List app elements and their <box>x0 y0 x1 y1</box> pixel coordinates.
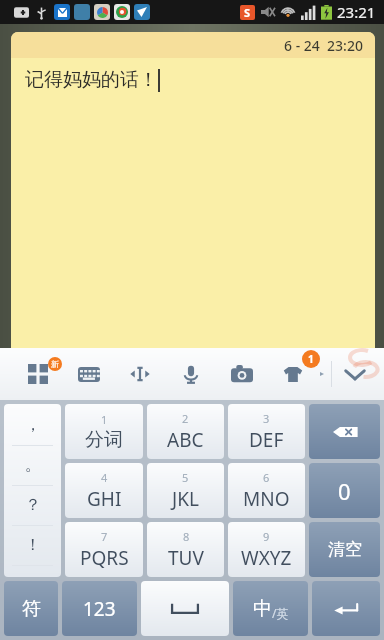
button[interactable]: 7 <box>65 522 143 577</box>
staticText: 分词 <box>85 428 123 452</box>
staticText: S <box>244 5 251 20</box>
staticText: ABC <box>167 427 204 453</box>
staticText: 7 <box>101 529 108 544</box>
staticText: 新 <box>51 359 59 369</box>
staticText: DEF <box>249 427 284 453</box>
staticText: 23:21 <box>337 2 376 22</box>
button[interactable]: ， <box>4 404 61 577</box>
staticText: 符 <box>22 597 41 621</box>
button[interactable]: 0 <box>309 463 380 518</box>
staticText: WXYZ <box>241 545 292 571</box>
staticText: GHI <box>87 486 122 512</box>
staticText: 3 <box>263 411 270 426</box>
other: Enter <box>332 600 360 618</box>
staticText: 。 <box>25 455 41 475</box>
button[interactable]: Enter <box>312 581 380 636</box>
staticText: 123 <box>83 596 116 622</box>
button[interactable]: Skins <box>273 354 313 394</box>
other: Space <box>168 602 202 616</box>
staticText: ！ <box>25 535 41 555</box>
button[interactable]: 符 <box>4 581 58 636</box>
staticText: 1 <box>308 352 314 366</box>
staticText: 6 - 24 23:20 <box>284 36 363 55</box>
button[interactable]: 4 <box>65 463 143 518</box>
staticText: 记得妈妈的话！ <box>25 68 158 92</box>
staticText: 清空 <box>328 539 362 560</box>
staticText: 9 <box>263 529 270 544</box>
button[interactable]: Toolbox <box>18 354 58 394</box>
button[interactable]: Camera input <box>222 354 262 394</box>
button[interactable]: Cursor move <box>120 354 160 394</box>
staticText: 0 <box>338 476 351 506</box>
staticText: 中 <box>253 597 272 621</box>
staticText: 1 <box>101 412 108 427</box>
staticText: 2 <box>182 411 189 426</box>
button[interactable]: Space <box>141 581 229 636</box>
staticText: PQRS <box>80 545 129 571</box>
button[interactable]: 8 <box>147 522 224 577</box>
button[interactable]: Keyboard <box>69 354 109 394</box>
staticText: ， <box>25 415 41 435</box>
button[interactable]: 6 - 24 23:20 <box>11 32 375 348</box>
staticText: 4 <box>101 470 108 485</box>
button[interactable]: 2 <box>147 404 224 459</box>
staticText: MNO <box>243 486 290 512</box>
button[interactable]: 中 <box>233 581 308 636</box>
staticText: /英 <box>272 605 289 621</box>
staticText: TUV <box>168 545 204 571</box>
button[interactable]: 5 <box>147 463 224 518</box>
staticText: ？ <box>25 495 41 515</box>
button[interactable]: Backspace <box>309 404 380 459</box>
other: Backspace <box>330 423 360 441</box>
button[interactable]: 9 <box>228 522 305 577</box>
button[interactable]: 123 <box>62 581 137 636</box>
button[interactable]: 6 <box>228 463 305 518</box>
button[interactable]: 3 <box>228 404 305 459</box>
button[interactable]: Hide keyboard <box>332 348 378 400</box>
staticText: 8 <box>183 529 190 544</box>
button[interactable]: 1 <box>65 404 143 459</box>
staticText: 5 <box>182 470 189 485</box>
button[interactable]: Voice input <box>171 354 211 394</box>
button[interactable]: More <box>313 348 331 400</box>
staticText: 6 <box>263 470 270 485</box>
button[interactable]: 清空 <box>309 522 380 577</box>
staticText: JKL <box>172 486 199 512</box>
